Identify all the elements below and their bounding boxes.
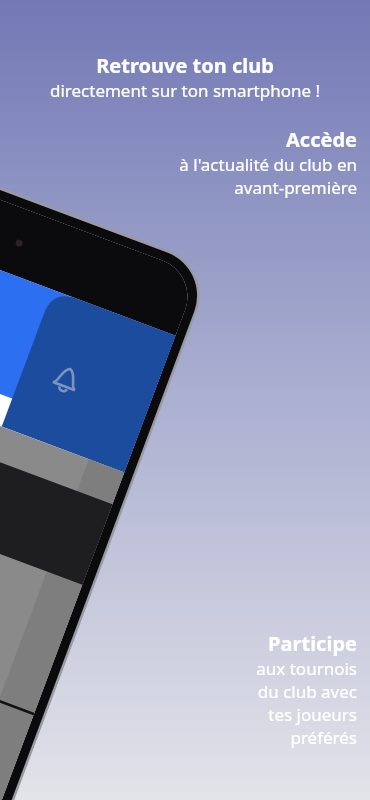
staticText: directement sur ton smartphone ! bbox=[14, 79, 356, 102]
staticText: avant-première bbox=[60, 176, 357, 199]
button[interactable]: Accède bbox=[60, 126, 357, 199]
staticText: Retrouve ton club bbox=[14, 52, 356, 79]
button[interactable]: Retrouve ton club bbox=[14, 52, 356, 102]
button[interactable]: Participe bbox=[150, 630, 357, 749]
staticText: à l'actualité du club en bbox=[60, 153, 357, 176]
staticText: préférés bbox=[150, 726, 357, 749]
staticText: Accède bbox=[60, 126, 357, 153]
staticText: du club avec bbox=[150, 680, 357, 703]
staticText: aux tournois bbox=[150, 657, 357, 680]
staticText: Participe bbox=[150, 630, 357, 657]
staticText: tes joueurs bbox=[150, 703, 357, 726]
